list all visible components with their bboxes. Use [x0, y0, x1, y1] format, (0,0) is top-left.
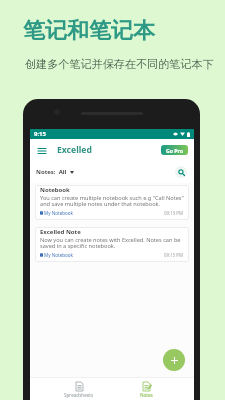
staticText: 9:15 [34, 130, 46, 138]
button[interactable]: Notes: All [36, 168, 74, 176]
button[interactable]: Excelled Note [35, 227, 189, 262]
staticText: Notebook [40, 186, 70, 194]
button[interactable]: Notebook [35, 185, 189, 220]
button[interactable]: Spreadsheets [59, 378, 99, 398]
button[interactable]: Menu [35, 144, 48, 157]
button[interactable]: Go Pro [161, 145, 188, 155]
staticText: Notes: All [36, 168, 67, 176]
staticText: You can create multiple notebook such e.… [40, 194, 184, 208]
button[interactable]: Notes [126, 378, 166, 398]
staticText: Spreadsheets [64, 392, 94, 398]
button[interactable]: Add note [163, 349, 185, 371]
staticText: Excelled Note [40, 228, 81, 236]
staticText: Go Pro [166, 147, 184, 154]
staticText: Now you can create notes with Excelled. … [40, 236, 184, 250]
staticText: My Notebook [44, 252, 74, 258]
staticText: Excelled [57, 144, 92, 156]
staticText: 创建多个笔记并保存在不同的笔记本下 [25, 57, 214, 71]
staticText: 09:15 PM [164, 252, 184, 258]
staticText: My Notebook [44, 210, 74, 216]
button[interactable]: Search [175, 166, 187, 178]
staticText: 09:15 PM [164, 210, 184, 216]
staticText: 笔记和笔记本 [23, 17, 155, 45]
staticText: Notes [140, 392, 153, 398]
